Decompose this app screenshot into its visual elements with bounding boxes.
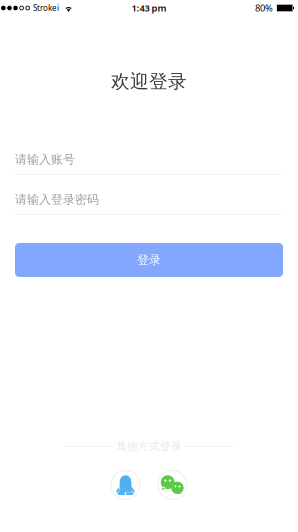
staticText: 其他方式登录	[116, 440, 182, 453]
button[interactable]: QQ 登录	[110, 470, 140, 500]
staticText: 请输入登录密码	[15, 192, 99, 207]
button[interactable]: 微信登录	[157, 470, 187, 500]
staticText: 登录	[137, 253, 161, 267]
staticText: 欢迎登录	[111, 70, 187, 93]
staticText: 80%	[255, 2, 273, 14]
staticText: 1:43 pm	[131, 2, 166, 14]
staticText: 请输入账号	[15, 152, 75, 167]
staticText: Strokei	[33, 3, 59, 13]
button[interactable]: 登录	[15, 243, 283, 277]
